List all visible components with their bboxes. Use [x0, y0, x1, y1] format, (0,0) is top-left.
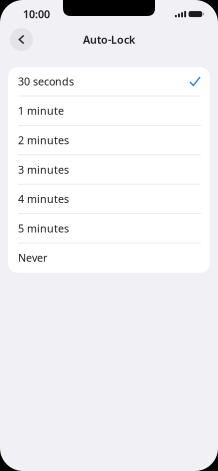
button[interactable]: 5 minutes	[8, 214, 210, 243]
staticText: Never	[18, 251, 47, 265]
staticText: 10:00	[23, 7, 50, 21]
staticText: 1 minute	[18, 104, 64, 118]
button[interactable]: 3 minutes	[8, 155, 210, 185]
staticText: Auto-Lock	[83, 32, 135, 47]
button[interactable]: 4 minutes	[8, 185, 210, 214]
staticText: 30 seconds	[18, 74, 74, 88]
button[interactable]: 30 seconds	[8, 67, 210, 96]
staticText: 2 minutes	[18, 133, 69, 147]
staticText: 4 minutes	[18, 192, 69, 206]
button[interactable]: Back	[10, 28, 33, 51]
staticText: 3 minutes	[18, 162, 69, 177]
button[interactable]: Never	[8, 243, 210, 273]
button[interactable]: 2 minutes	[8, 126, 210, 155]
staticText: 5 minutes	[18, 221, 69, 235]
button[interactable]: 1 minute	[8, 96, 210, 126]
